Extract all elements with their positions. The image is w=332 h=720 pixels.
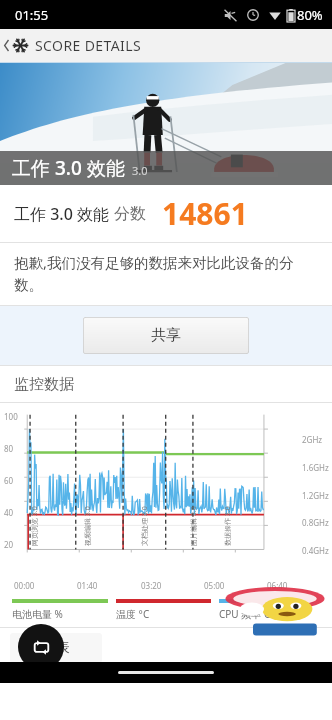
staticText: 共享 xyxy=(151,326,181,345)
staticText: 01:55 xyxy=(15,6,49,24)
button[interactable]: Compare xyxy=(18,624,64,670)
staticText: 抱歉,我们没有足够的数据来对比此设备的分 数。 xyxy=(14,252,294,294)
staticText: 3.0 xyxy=(132,163,148,178)
staticText: 80 xyxy=(4,443,24,454)
staticText: 05:00 xyxy=(204,580,225,591)
staticText: SCORE DETAILS xyxy=(35,36,142,55)
staticText: 温度 °C xyxy=(116,607,150,621)
staticText: 2GHz xyxy=(302,434,323,445)
staticText: 图片编辑 3.0 xyxy=(189,506,199,546)
staticText: 00:00 xyxy=(14,580,35,591)
staticText: 电池电量 % xyxy=(12,607,63,621)
staticText: 06:40 xyxy=(267,580,288,591)
staticText: 0.8GHz xyxy=(302,517,329,528)
staticText: 1.2GHz xyxy=(302,490,329,501)
staticText: 40 xyxy=(4,507,24,518)
staticText: CPU 频率 GHz xyxy=(219,607,284,621)
staticText: 03:20 xyxy=(141,580,162,591)
staticText: 14861 xyxy=(162,193,248,234)
staticText: 60 xyxy=(4,475,24,486)
staticText: 1.6GHz xyxy=(302,462,329,473)
button[interactable]: 图表 xyxy=(10,633,102,663)
staticText: 01:40 xyxy=(77,580,98,591)
staticText: 工作 3.0 效能 xyxy=(14,203,114,225)
staticText: 图表 xyxy=(42,639,70,657)
staticText: 0.4GHz xyxy=(302,545,329,556)
button[interactable]: Back xyxy=(0,29,13,62)
button[interactable]: 共享 xyxy=(83,317,249,354)
staticText: 文档处理 3.0 xyxy=(140,506,150,546)
staticText: 视频编辑 3.0 xyxy=(83,506,93,546)
staticText: 工作 3.0 效能 xyxy=(12,155,125,181)
staticText: 80% xyxy=(297,6,323,24)
staticText: 数据操作 3.0 xyxy=(223,506,233,546)
staticText: 网页浏览 3.0 xyxy=(30,506,40,546)
staticText: 分数 xyxy=(114,204,146,224)
staticText: 100 xyxy=(4,411,24,422)
staticText: 20 xyxy=(4,539,24,550)
staticText: 监控数据 xyxy=(14,375,74,394)
